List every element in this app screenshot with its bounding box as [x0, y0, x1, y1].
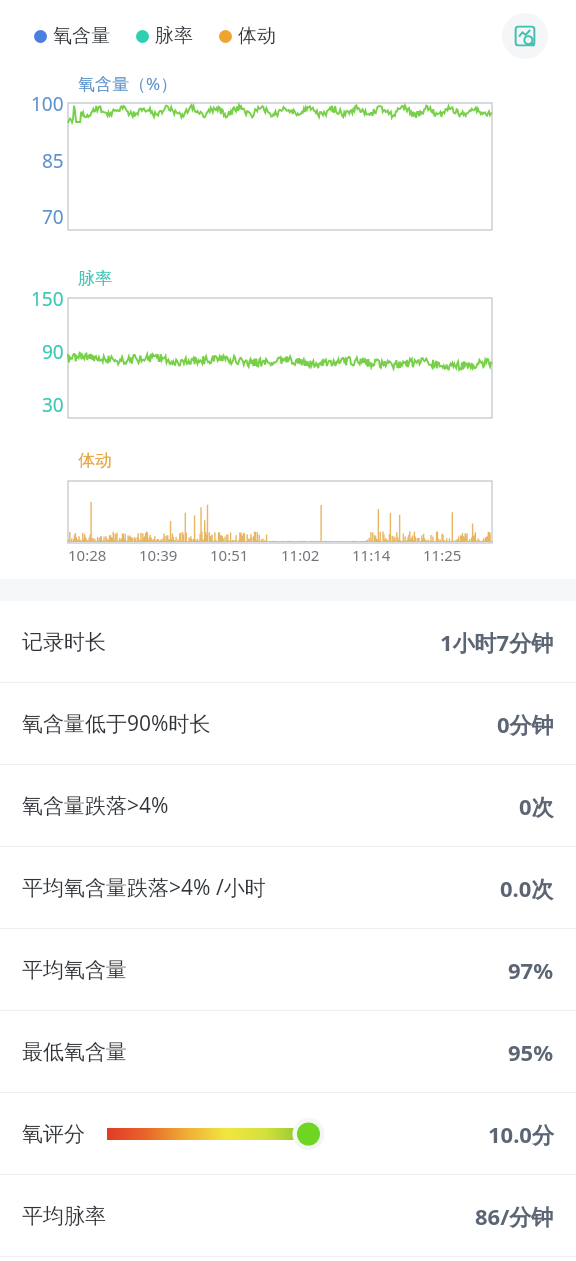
button[interactable]: 记录时长 — [0, 601, 576, 682]
staticText: 30 — [42, 392, 64, 418]
button[interactable]: 脉率 — [136, 24, 193, 48]
staticText: 10:51 — [210, 545, 249, 565]
staticText: 氧含量跌落>4% — [22, 791, 169, 820]
staticText: 平均脉率 — [22, 1203, 106, 1229]
staticText: 体动 — [78, 450, 112, 471]
staticText: 10:28 — [68, 545, 107, 565]
staticText: 95% — [508, 1037, 554, 1067]
button[interactable]: 体动 — [219, 24, 276, 48]
button[interactable]: 最低氧含量 — [0, 1011, 576, 1092]
staticText: 氧评分 — [22, 1121, 85, 1147]
staticText: 最低氧含量 — [22, 1039, 127, 1065]
staticText: 氧含量 — [53, 24, 110, 48]
staticText: 0.0次 — [500, 873, 554, 903]
staticText: 70 — [42, 204, 64, 230]
staticText: 100 — [31, 91, 64, 117]
staticText: 氧含量（%） — [78, 72, 178, 95]
staticText: 氧含量低于90%时长 — [22, 709, 211, 738]
staticText: 85 — [42, 148, 64, 174]
button[interactable]: 平均脉率 — [0, 1175, 576, 1256]
button[interactable]: 氧含量跌落>4% — [0, 765, 576, 846]
staticText: 0分钟 — [497, 709, 554, 739]
staticText: 0次 — [519, 791, 554, 821]
staticText: 11:25 — [423, 545, 462, 565]
staticText: 86/分钟 — [475, 1201, 554, 1231]
button[interactable]: 查看图表详情 — [502, 13, 548, 59]
button[interactable]: 氧含量低于90%时长 — [0, 683, 576, 764]
button[interactable]: 氧评分 — [0, 1093, 576, 1174]
button[interactable]: 氧含量 — [34, 24, 110, 48]
staticText: 150 — [31, 286, 64, 312]
staticText: 10.0分 — [488, 1119, 554, 1149]
staticText: 脉率 — [155, 24, 193, 48]
button[interactable]: 平均氧含量跌落>4% /小时 — [0, 847, 576, 928]
staticText: 脉率 — [78, 268, 112, 289]
staticText: 90 — [42, 339, 64, 365]
staticText: 平均氧含量跌落>4% /小时 — [22, 873, 266, 902]
staticText: 体动 — [238, 24, 276, 48]
staticText: 10:39 — [139, 545, 178, 565]
staticText: 1小时7分钟 — [440, 627, 554, 657]
staticText: 记录时长 — [22, 629, 106, 655]
staticText: 平均氧含量 — [22, 957, 127, 983]
staticText: 97% — [508, 955, 554, 985]
staticText: 11:02 — [281, 545, 320, 565]
staticText: 11:14 — [352, 545, 391, 565]
button[interactable]: 平均氧含量 — [0, 929, 576, 1010]
